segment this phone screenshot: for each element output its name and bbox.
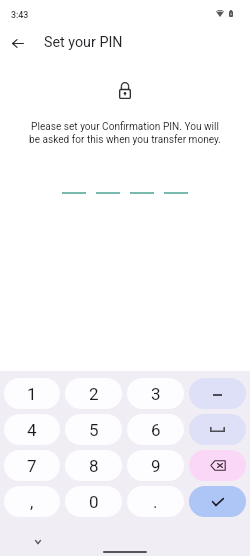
staticText: 9 [151,456,161,476]
button[interactable]: Back [4,27,32,55]
staticText: 3 [151,384,161,404]
staticText: . [153,492,158,512]
staticText: , [30,492,34,512]
staticText: 3:43 [11,10,29,20]
button[interactable]: 8 [65,450,122,481]
button[interactable]: 2 [65,378,122,409]
staticText: 4 [27,420,37,440]
staticText: Set your PIN [44,34,123,51]
button[interactable]: Enter [189,486,246,517]
button[interactable]: 6 [127,414,184,445]
staticText: 6 [151,420,161,440]
button[interactable]: 3 [127,378,184,409]
button[interactable]: 1 [4,378,60,409]
staticText: 8 [89,456,99,476]
button[interactable]: 4 [4,414,60,445]
staticText: 5 [89,420,99,440]
button[interactable]: Backspace [189,450,246,481]
staticText: 2 [89,384,99,404]
button[interactable]: 7 [4,450,60,481]
staticText: 7 [27,456,37,476]
button[interactable]: , [4,486,60,517]
button[interactable]: Hide keyboard [28,532,48,552]
staticText: 1 [27,384,37,404]
button[interactable]: 5 [65,414,122,445]
staticText: Please set your Confirmation PIN. You wi… [26,121,224,145]
button[interactable]: Space [189,414,246,445]
button[interactable]: 0 [65,486,122,517]
staticText: 0 [89,492,99,512]
button[interactable] [189,378,246,409]
button[interactable]: 9 [127,450,184,481]
button[interactable]: . [127,486,184,517]
